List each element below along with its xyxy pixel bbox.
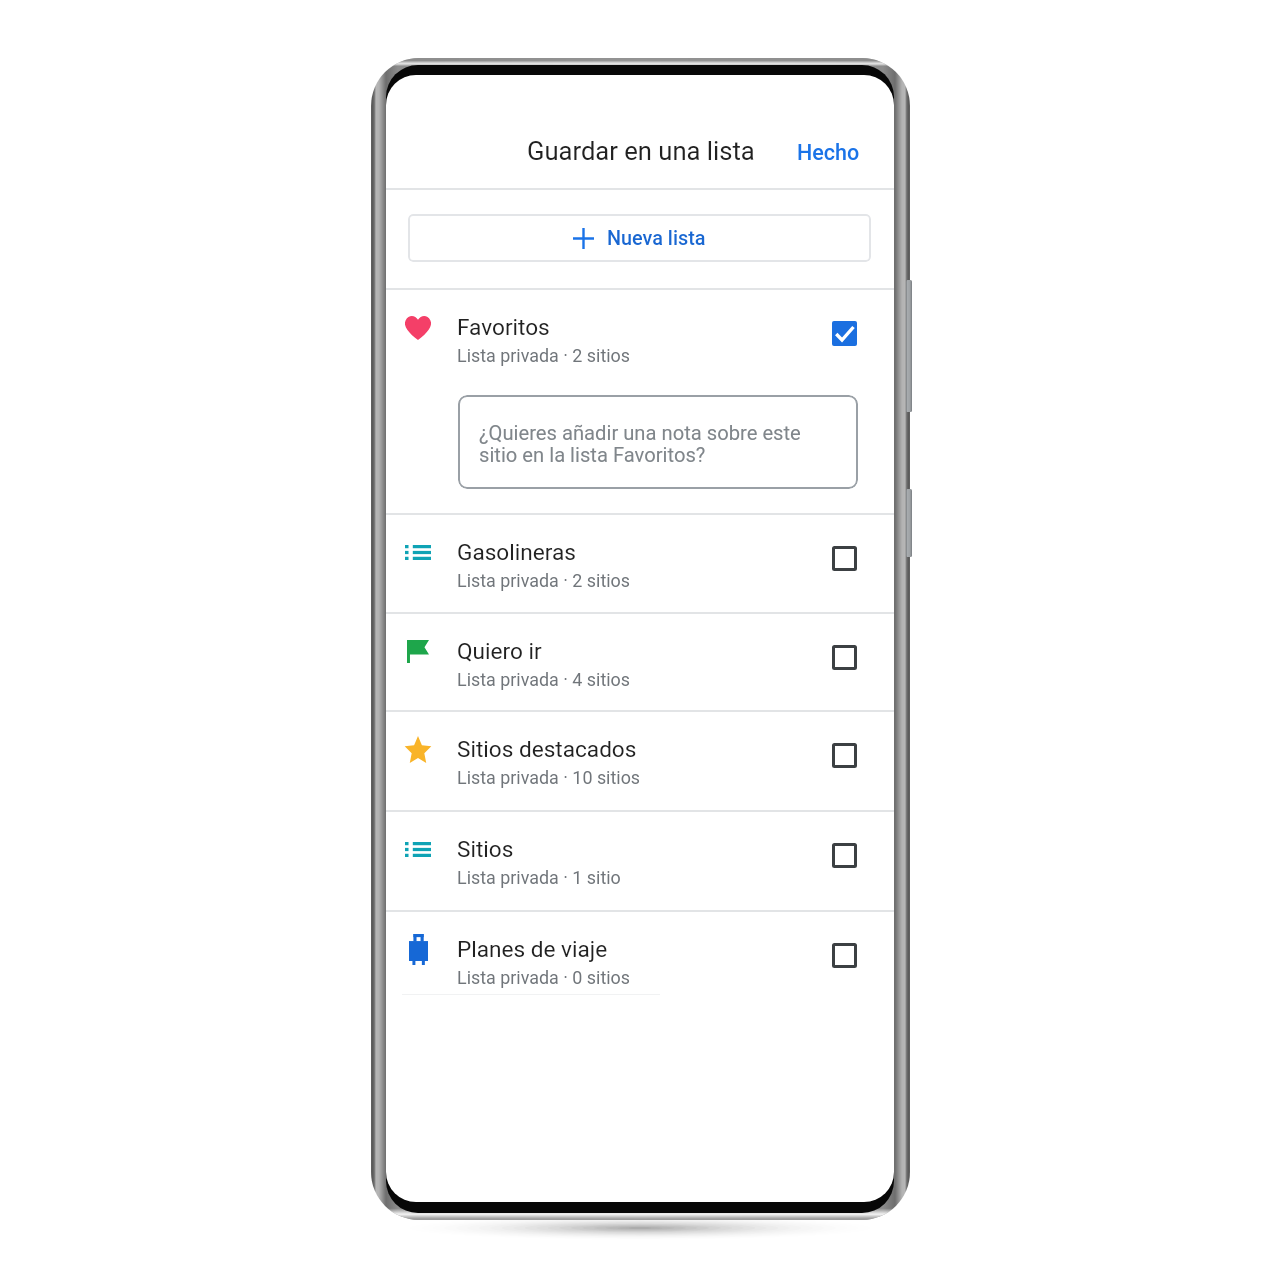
staticText: Nueva lista bbox=[607, 227, 706, 250]
button[interactable]: Nueva lista bbox=[408, 214, 871, 262]
other: Volume bbox=[906, 280, 912, 412]
staticText: Lista privada · 10 sitios bbox=[457, 767, 641, 788]
staticText: Sitios destacados bbox=[457, 736, 637, 762]
button[interactable]: Not selected bbox=[825, 638, 863, 676]
staticText: ¿Quieres añadir una nota sobre este siti… bbox=[479, 421, 814, 467]
button[interactable]: Hecho bbox=[785, 128, 872, 177]
button[interactable]: ¿Quieres añadir una nota sobre este siti… bbox=[458, 395, 858, 489]
other: Power bbox=[906, 489, 912, 557]
button[interactable]: Selected bbox=[825, 314, 863, 352]
button[interactable]: Quiero ir bbox=[386, 612, 894, 711]
staticText: Lista privada · 1 sitio bbox=[457, 867, 621, 888]
staticText: Lista privada · 0 sitios bbox=[457, 967, 631, 988]
staticText: Guardar en una lista bbox=[527, 136, 755, 166]
staticText: Lista privada · 4 sitios bbox=[457, 669, 631, 690]
staticText: Gasolineras bbox=[457, 539, 576, 565]
button[interactable]: Favoritos bbox=[386, 288, 894, 387]
staticText: Hecho bbox=[797, 140, 860, 165]
button[interactable]: Not selected bbox=[825, 936, 863, 974]
staticText: Favoritos bbox=[457, 314, 550, 340]
button[interactable]: Planes de viaje bbox=[386, 910, 894, 1009]
button[interactable]: Not selected bbox=[825, 736, 863, 774]
button[interactable]: Not selected bbox=[825, 836, 863, 874]
button[interactable]: Gasolineras bbox=[386, 513, 894, 612]
button[interactable]: Not selected bbox=[825, 539, 863, 577]
staticText: Planes de viaje bbox=[457, 936, 608, 962]
button[interactable]: Sitios bbox=[386, 810, 894, 909]
button[interactable]: Sitios destacados bbox=[386, 710, 894, 809]
staticText: Lista privada · 2 sitios bbox=[457, 570, 631, 591]
staticText: Sitios bbox=[457, 836, 514, 862]
staticText: Quiero ir bbox=[457, 638, 542, 664]
staticText: Lista privada · 2 sitios bbox=[457, 345, 631, 366]
